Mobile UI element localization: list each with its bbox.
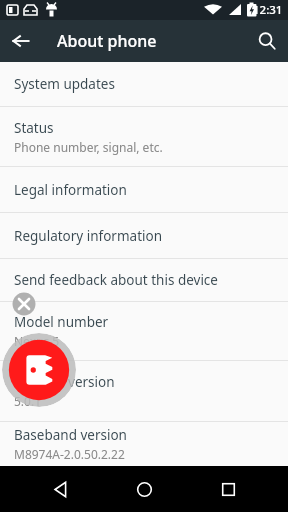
staticText: Status: [14, 119, 54, 137]
button[interactable]: Status: [0, 107, 288, 166]
button[interactable]: Home: [120, 466, 168, 512]
button[interactable]: Close recorder: [10, 290, 38, 318]
staticText: Model number: [14, 313, 109, 331]
button[interactable]: Navigate up: [0, 20, 42, 62]
staticText: 12:31: [253, 2, 283, 18]
button[interactable]: System updates: [0, 62, 288, 106]
staticText: 5.0.1: [14, 393, 42, 409]
button[interactable]: Send feedback about this device: [0, 259, 288, 301]
staticText: System updates: [14, 75, 115, 93]
staticText: Android version: [14, 373, 115, 391]
staticText: Regulatory information: [14, 227, 163, 245]
button[interactable]: Baseband version: [0, 422, 288, 466]
staticText: Phone number, signal, etc.: [14, 139, 163, 155]
staticText: Baseband version: [14, 426, 127, 444]
button[interactable]: Model number: [0, 302, 288, 360]
staticText: Legal information: [14, 181, 127, 199]
staticText: M8974A-2.0.50.2.22: [14, 446, 125, 462]
staticText: About phone: [57, 30, 246, 52]
button[interactable]: Search: [246, 20, 288, 62]
button[interactable]: Screen recorder: [2, 333, 76, 407]
staticText: Send feedback about this device: [14, 271, 218, 289]
button[interactable]: Regulatory information: [0, 213, 288, 258]
button[interactable]: Back: [36, 466, 84, 512]
staticText: Nexus 5: [14, 333, 60, 349]
button[interactable]: Legal information: [0, 167, 288, 212]
button[interactable]: Recent apps: [204, 466, 252, 512]
button[interactable]: Android version: [0, 361, 288, 421]
